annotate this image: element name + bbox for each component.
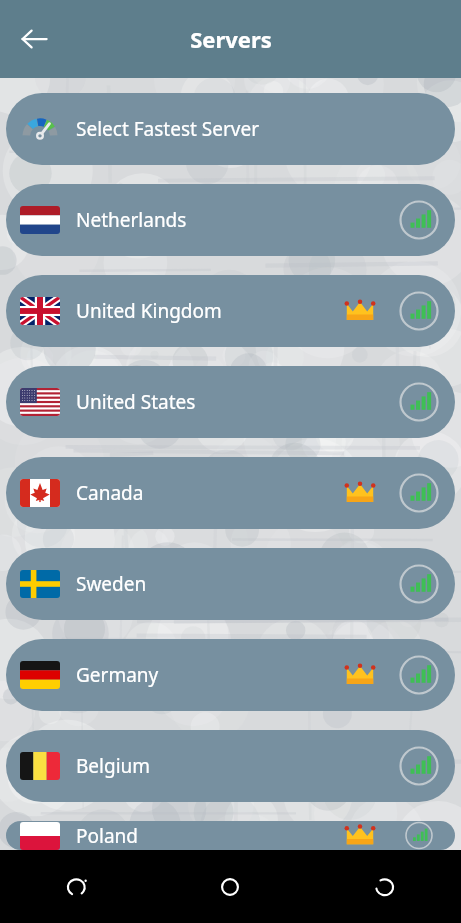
button[interactable]: Netherlands [6,184,455,256]
staticText: Servers [190,24,272,54]
button[interactable]: Belgium [6,730,455,802]
button[interactable]: Back [8,13,60,65]
staticText: Canada [76,480,144,506]
staticText: United States [76,389,196,415]
button[interactable]: Home [206,863,254,911]
button[interactable]: United Kingdom [6,275,455,347]
staticText: Belgium [76,753,151,779]
staticText: Sweden [76,571,147,597]
staticText: Poland [76,823,138,849]
button[interactable]: Sweden [6,548,455,620]
button[interactable]: Recents [360,863,408,911]
staticText: Netherlands [76,207,187,233]
button[interactable]: Back [53,863,101,911]
staticText: Select Fastest Server [76,116,259,142]
button[interactable]: Poland [6,821,455,850]
button[interactable]: United States [6,366,455,438]
button[interactable]: Select Fastest Server [6,93,455,165]
staticText: Germany [76,662,159,688]
button[interactable]: Germany [6,639,455,711]
button[interactable]: Canada [6,457,455,529]
staticText: United Kingdom [76,298,222,324]
